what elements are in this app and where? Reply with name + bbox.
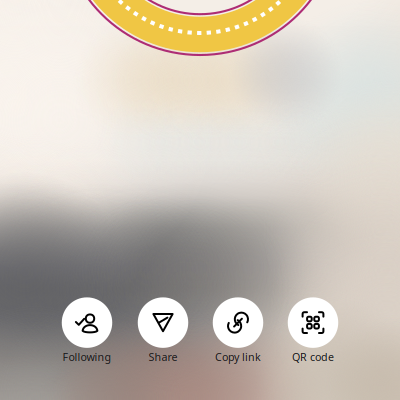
staticText: Share <box>148 350 177 364</box>
staticText: QR code <box>292 350 334 364</box>
staticText: Following <box>62 350 111 364</box>
staticText: Copy link <box>215 350 261 364</box>
button[interactable]: Copy link <box>200 297 276 364</box>
button[interactable]: Share <box>125 297 201 364</box>
button[interactable]: QR code <box>275 297 351 364</box>
button[interactable]: Following <box>49 297 125 364</box>
